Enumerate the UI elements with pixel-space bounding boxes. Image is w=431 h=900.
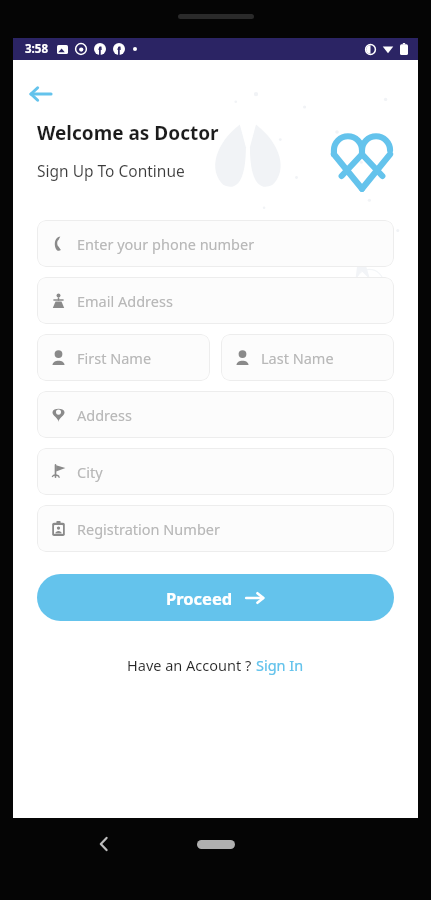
staticText: Email Address (77, 291, 173, 311)
button[interactable]: Have an Account ? (37, 655, 394, 675)
button[interactable]: Back (88, 828, 120, 860)
button[interactable]: Home (197, 840, 235, 849)
staticText: City (77, 462, 103, 482)
staticText: Proceed (166, 587, 233, 609)
staticText: Welcome as Doctor (37, 120, 219, 146)
staticText: Last Name (261, 348, 334, 368)
button[interactable]: City (37, 448, 394, 495)
button[interactable]: First Name (37, 334, 210, 381)
staticText: First Name (77, 348, 152, 368)
staticText: Registration Number (77, 519, 220, 539)
staticText: Enter your phone number (77, 234, 255, 254)
button[interactable]: Proceed (37, 574, 394, 621)
button[interactable]: Back (29, 74, 69, 114)
button[interactable]: Registration Number (37, 505, 394, 552)
button[interactable]: Email Address (37, 277, 394, 324)
staticText: Sign In (256, 655, 304, 675)
button[interactable]: Last Name (221, 334, 394, 381)
button[interactable]: Enter your phone number (37, 220, 394, 267)
staticText: Address (77, 405, 132, 425)
staticText: Sign Up To Continue (37, 160, 185, 181)
staticText: 3:58 (25, 41, 48, 57)
staticText: Have an Account ? (127, 655, 256, 675)
button[interactable]: Address (37, 391, 394, 438)
